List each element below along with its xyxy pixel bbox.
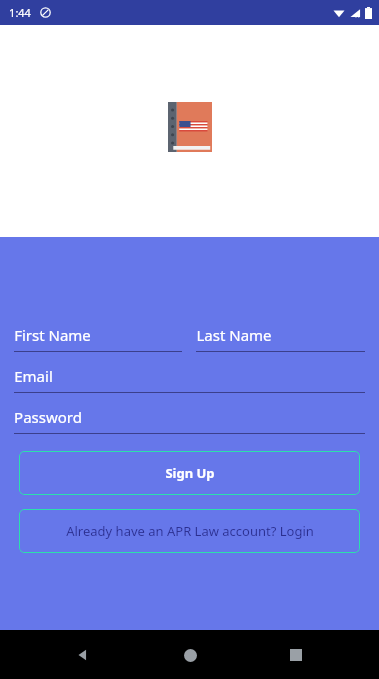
button[interactable]: Home xyxy=(166,631,214,679)
staticText: 1:44 xyxy=(9,5,31,20)
button[interactable]: Back xyxy=(59,631,107,679)
button[interactable]: Last Name xyxy=(196,325,365,352)
staticText: First Name xyxy=(14,325,91,345)
button[interactable]: Sign Up xyxy=(19,451,360,495)
staticText: Sign Up xyxy=(165,464,215,482)
staticText: Last Name xyxy=(196,325,272,345)
staticText: Already have an APR Law account? Login xyxy=(66,522,314,540)
staticText: Email xyxy=(14,366,53,386)
button[interactable]: Recent apps xyxy=(272,631,320,679)
staticText: Password xyxy=(14,407,82,427)
button[interactable]: Already have an APR Law account? Login xyxy=(19,509,360,553)
button[interactable]: Password xyxy=(14,407,365,434)
button[interactable]: Email xyxy=(14,366,365,393)
button[interactable]: First Name xyxy=(14,325,182,352)
